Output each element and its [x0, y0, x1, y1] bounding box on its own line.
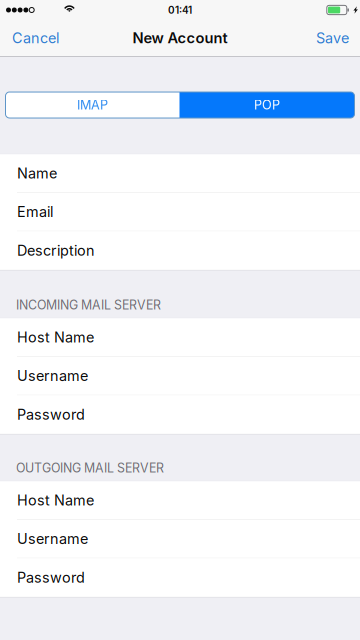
- staticText: Email: [17, 203, 53, 220]
- button[interactable]: Description: [0, 231, 360, 270]
- button[interactable]: POP: [179, 92, 354, 118]
- button[interactable]: IMAP: [5, 92, 179, 118]
- button[interactable]: Name: [0, 154, 360, 193]
- staticText: OUTGOING MAIL SERVER: [16, 460, 164, 475]
- staticText: New Account: [132, 29, 227, 47]
- staticText: Password: [17, 406, 85, 423]
- staticText: Description: [17, 242, 95, 259]
- staticText: Save: [316, 29, 349, 47]
- staticText: 01:41: [168, 4, 192, 16]
- staticText: IMAP: [77, 97, 108, 113]
- button[interactable]: Save: [289, 20, 360, 56]
- button[interactable]: Cancel: [0, 20, 84, 56]
- staticText: Host Name: [17, 492, 94, 509]
- button[interactable]: Username: [0, 520, 360, 558]
- staticText: Cancel: [12, 29, 59, 47]
- staticText: Name: [17, 165, 57, 182]
- button[interactable]: Username: [0, 357, 360, 395]
- button[interactable]: Password: [0, 558, 360, 597]
- button[interactable]: Host Name: [0, 318, 360, 357]
- staticText: Password: [17, 569, 85, 586]
- staticText: INCOMING MAIL SERVER: [16, 297, 161, 312]
- staticText: Username: [17, 367, 88, 384]
- button[interactable]: Host Name: [0, 481, 360, 520]
- staticText: Username: [17, 530, 88, 547]
- button[interactable]: Password: [0, 395, 360, 434]
- staticText: Host Name: [17, 329, 94, 346]
- staticText: POP: [254, 97, 280, 113]
- button[interactable]: Email: [0, 193, 360, 231]
